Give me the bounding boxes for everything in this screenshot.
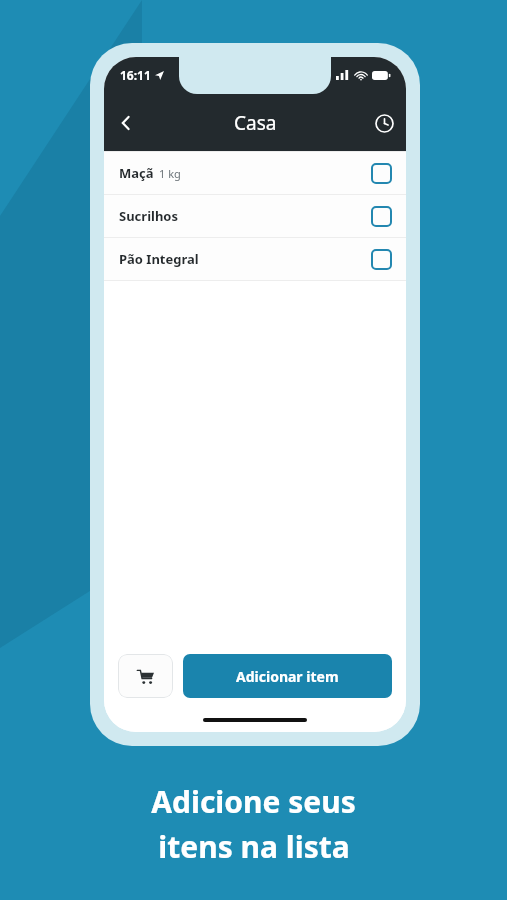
staticText: Adicione seus <box>151 781 356 822</box>
staticText: Sucrilhos <box>119 207 178 225</box>
staticText: 16:11 <box>120 67 151 83</box>
button[interactable]: Check Pão Integral <box>372 250 391 269</box>
staticText: itens na lista <box>158 826 350 867</box>
button[interactable]: Check Sucrilhos <box>372 207 391 226</box>
staticText: Pão Integral <box>119 250 199 268</box>
button[interactable]: Adicionar item <box>183 654 392 698</box>
staticText: Casa <box>234 110 277 136</box>
button[interactable]: Sucrilhos <box>104 195 406 237</box>
button[interactable]: Back <box>104 101 148 145</box>
button[interactable]: History <box>362 101 406 145</box>
button[interactable]: Pão Integral <box>104 238 406 280</box>
button[interactable]: Maçã <box>104 152 406 194</box>
staticText: 1 kg <box>159 166 181 181</box>
button[interactable]: Cart <box>118 654 173 698</box>
button[interactable]: Check Maçã <box>372 164 391 183</box>
staticText: Maçã <box>119 164 154 182</box>
staticText: Adicionar item <box>236 667 339 686</box>
